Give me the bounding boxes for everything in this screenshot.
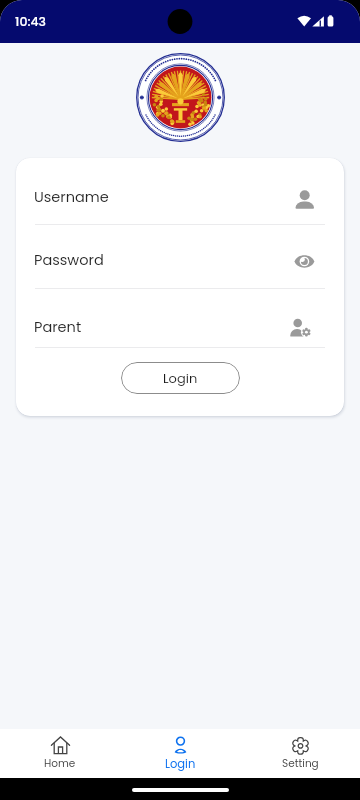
other: Parent type: [289, 312, 314, 337]
other: Username: [292, 187, 317, 212]
staticText: 10:43: [15, 13, 46, 30]
staticText: Parent: [34, 317, 82, 337]
staticText: Setting: [282, 756, 319, 771]
staticText: Login: [163, 369, 198, 387]
button[interactable]: Login: [121, 362, 240, 394]
other: School logo: [136, 53, 225, 142]
button[interactable]: Login: [120, 729, 240, 778]
staticText: Login: [165, 756, 196, 772]
button[interactable]: Setting: [240, 729, 360, 778]
button[interactable]: Parent: [16, 288, 344, 348]
staticText: Username: [34, 187, 109, 207]
button[interactable]: Password: [16, 225, 344, 288]
button[interactable]: Username: [16, 158, 344, 225]
button[interactable]: Home: [0, 729, 120, 778]
other: Show password: [292, 249, 317, 274]
staticText: Password: [34, 250, 104, 270]
staticText: Home: [44, 756, 76, 771]
